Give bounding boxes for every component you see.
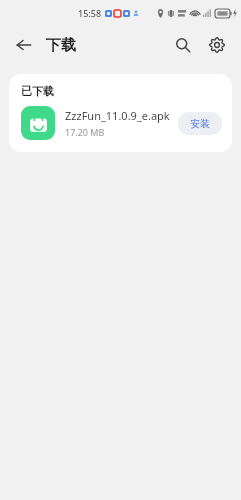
staticText: 15:58	[78, 7, 102, 19]
staticText: 已下载	[21, 84, 54, 98]
button[interactable]: Back	[8, 29, 40, 61]
staticText: 17.20 MB	[65, 126, 105, 138]
staticText: 安装	[190, 117, 210, 130]
staticText: 下载	[46, 36, 76, 55]
button[interactable]: ZzzFun_11.0.9_e.apk	[9, 98, 232, 152]
button[interactable]: Search	[167, 29, 199, 61]
staticText: ZzzFun_11.0.9_e.apk	[65, 108, 170, 123]
button[interactable]: 安装	[178, 112, 222, 135]
button[interactable]: Settings	[201, 29, 233, 61]
